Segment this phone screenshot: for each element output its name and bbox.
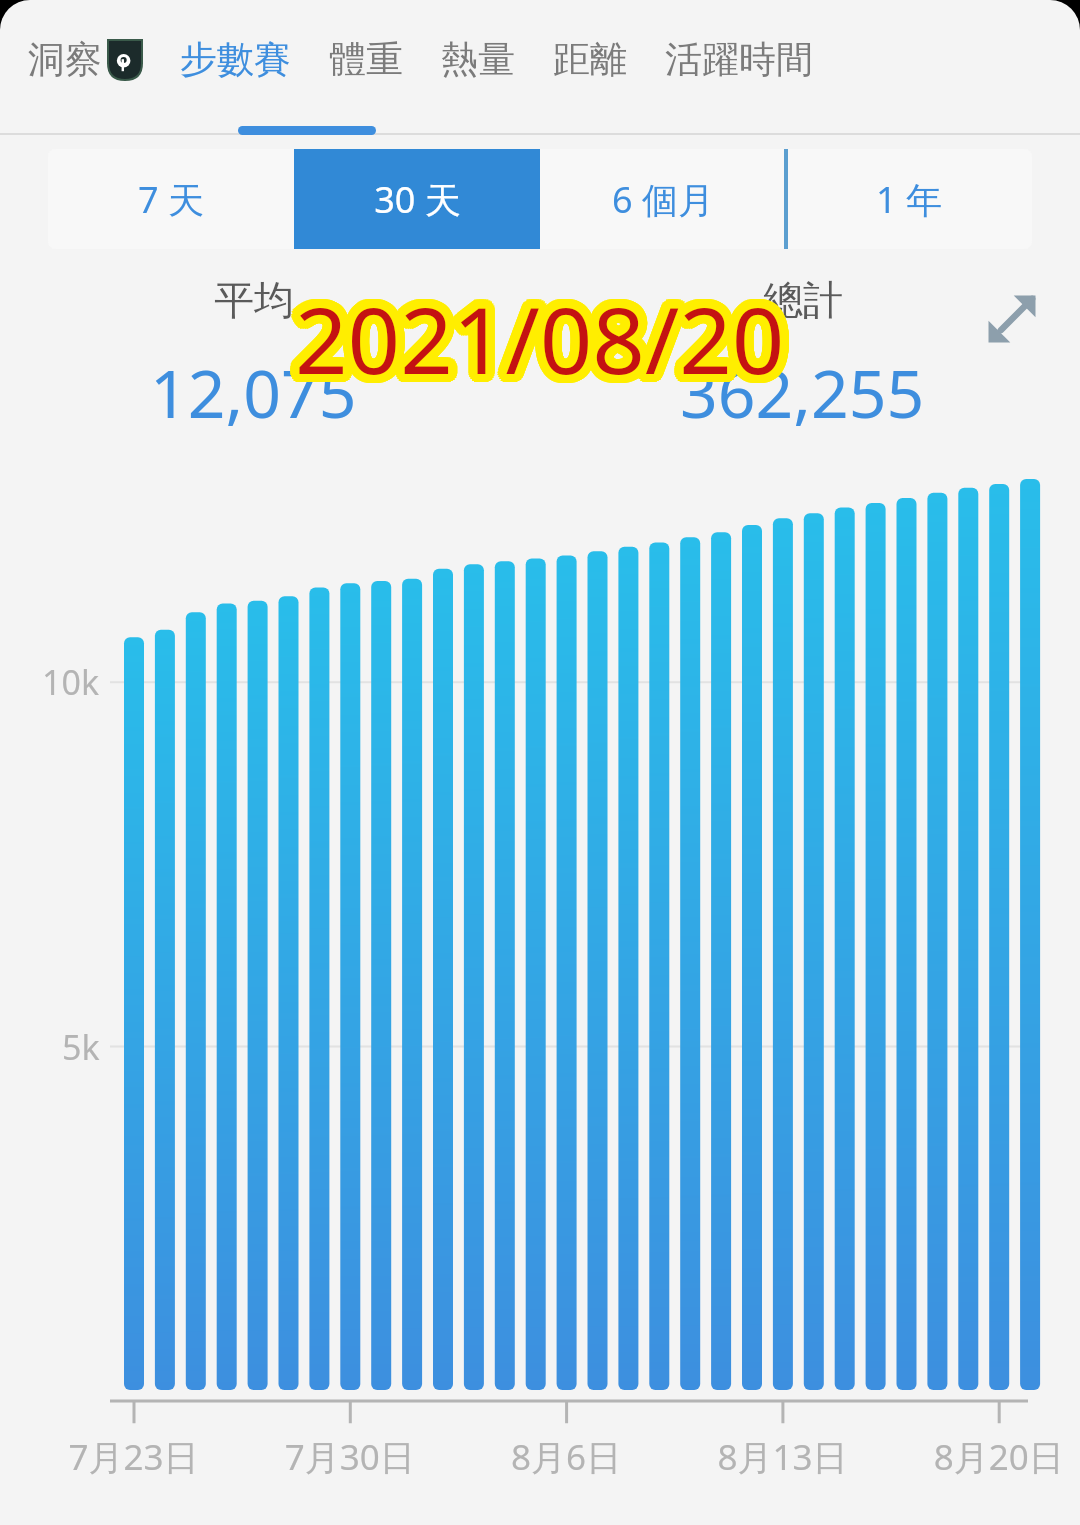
button[interactable]: 1 年: [786, 149, 1032, 249]
button[interactable]: 活躍時間: [659, 36, 819, 83]
staticText: 平均: [214, 275, 294, 325]
staticText: 6 個月: [612, 175, 714, 224]
button[interactable]: 步數賽: [174, 36, 297, 83]
button[interactable]: 30 天: [294, 149, 540, 249]
button[interactable]: 熱量: [435, 36, 521, 83]
staticText: 7 天: [138, 175, 204, 224]
staticText: 12,075: [150, 347, 357, 437]
button[interactable]: Expand chart: [974, 281, 1050, 357]
button[interactable]: 7 天: [48, 149, 294, 249]
button[interactable]: 距離: [547, 36, 633, 83]
staticText: 洞察: [28, 36, 102, 83]
button[interactable]: 體重: [323, 36, 409, 83]
staticText: 熱量: [441, 36, 515, 83]
staticText: 體重: [329, 36, 403, 83]
staticText: 距離: [553, 36, 627, 83]
button[interactable]: 洞察: [22, 36, 148, 83]
staticText: 30 天: [374, 175, 461, 224]
button[interactable]: 6 個月: [540, 149, 786, 249]
staticText: 1 年: [876, 175, 942, 224]
staticText: 步數賽: [180, 36, 291, 83]
staticText: 362,255: [680, 347, 925, 437]
staticText: 活躍時間: [665, 36, 813, 83]
staticText: 總計: [763, 275, 843, 325]
